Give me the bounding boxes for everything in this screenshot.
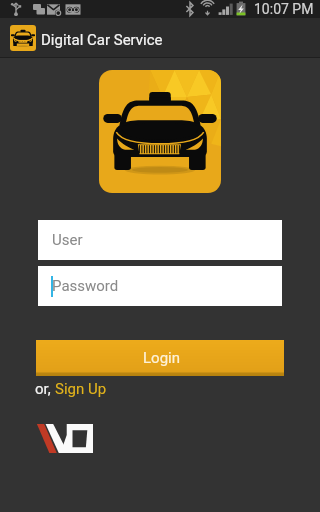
button[interactable]: Digital Car Service — [0, 18, 320, 58]
staticText: Sign Up — [55, 380, 107, 398]
button[interactable]: Password — [38, 266, 282, 306]
staticText: Digital Car Service — [41, 31, 163, 49]
staticText: or, — [35, 380, 55, 398]
staticText: Login — [143, 349, 180, 367]
button[interactable]: Login — [36, 340, 284, 376]
staticText: 10:07 PM — [254, 1, 314, 17]
staticText: Password — [52, 277, 119, 295]
button[interactable]: Sign Up — [55, 380, 107, 398]
staticText: User — [52, 231, 83, 249]
other: Company logo — [36, 424, 93, 453]
button[interactable]: User — [38, 220, 282, 260]
